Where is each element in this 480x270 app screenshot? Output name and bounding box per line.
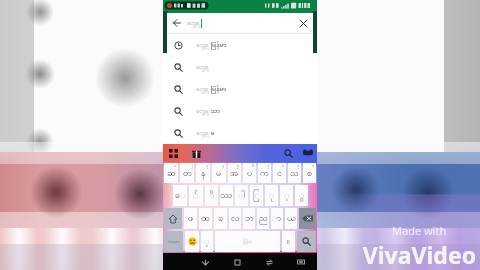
staticText: င [277, 167, 282, 180]
button[interactable]: Recents [262, 255, 276, 269]
staticText: ့ [284, 189, 290, 202]
staticText: မြန်မာ [209, 83, 227, 96]
button[interactable]: ြ [250, 185, 263, 206]
staticText: ဿ [220, 189, 233, 202]
staticText: ၉ [297, 163, 300, 169]
staticText: ယ [287, 212, 296, 225]
button[interactable]: ထ [199, 208, 212, 229]
button[interactable]: Switch keyboard [294, 255, 308, 269]
staticText: မြန်မာ [243, 239, 252, 245]
staticText: ၆ [252, 163, 255, 169]
button[interactable]: ပ [243, 163, 256, 183]
button[interactable]: ါ [235, 185, 248, 206]
button[interactable]: ွ [295, 185, 308, 206]
button[interactable]: တွေ့ရ [167, 100, 313, 122]
staticText: က [260, 167, 269, 180]
button[interactable]: ယ [285, 208, 297, 229]
button[interactable]: ေ [173, 185, 187, 206]
staticText: သာ [209, 105, 220, 118]
staticText: အ [230, 167, 239, 180]
button[interactable]: ။ [282, 231, 295, 252]
staticText: လ [231, 212, 240, 225]
staticText: ကခဂ [168, 238, 179, 245]
staticText: ြ [253, 189, 261, 202]
button[interactable]: လ [229, 208, 241, 229]
staticText: တွေ့ရ [196, 107, 209, 116]
button[interactable]: Search [282, 147, 294, 159]
staticText: ခ [218, 212, 224, 225]
button[interactable]: Search [297, 231, 316, 252]
button[interactable]: တ [180, 163, 194, 183]
button[interactable]: ့ [280, 185, 293, 206]
staticText: ထ [201, 212, 210, 225]
button[interactable]: မ [212, 163, 226, 183]
button[interactable]: ဆ [164, 163, 178, 183]
button[interactable]: တွေ့ရ [167, 34, 313, 56]
staticText: ၈ [282, 163, 285, 169]
staticText: ါ [238, 189, 246, 202]
staticText: ဆ [167, 167, 176, 180]
staticText: တွေ့ရ [196, 85, 209, 94]
staticText: ၃ [206, 163, 209, 169]
button[interactable]: တွေ့ရ [167, 56, 313, 78]
staticText: ု [269, 189, 275, 202]
staticText: ၇ [267, 163, 270, 169]
button[interactable]: ဿ [220, 185, 233, 206]
staticText: တွေ့ရ [187, 19, 200, 28]
staticText: တွေ့ရ [196, 63, 209, 72]
button[interactable]: Hide keyboard [198, 255, 212, 269]
button[interactable]: အ [228, 163, 241, 183]
staticText: တွေ့ရ [196, 41, 209, 50]
button[interactable]: Emoji [185, 231, 199, 252]
staticText: ၀ [312, 163, 315, 169]
staticText: သ [290, 167, 299, 180]
staticText: ာ [272, 212, 282, 225]
button[interactable]: စ [303, 163, 316, 183]
button[interactable]: ဖ [184, 208, 197, 229]
button[interactable]: သ [288, 163, 301, 183]
staticText: ၅ [237, 163, 240, 169]
button[interactable]: ဘ [243, 208, 255, 229]
button[interactable]: Symbols [164, 231, 183, 252]
button[interactable]: Keyboard apps [167, 147, 179, 159]
staticText: ဖ [188, 212, 194, 225]
staticText: ။ [287, 235, 290, 248]
button[interactable]: Home [230, 255, 244, 269]
staticText: ည [259, 212, 268, 225]
button[interactable]: ် [189, 185, 203, 206]
button[interactable]: ိ [205, 185, 218, 206]
staticText: ဘ [245, 212, 254, 225]
staticText: ိ [209, 189, 215, 202]
staticText: ့ [204, 235, 210, 248]
button[interactable]: Stickers [190, 147, 202, 159]
button[interactable]: Backspace [299, 208, 316, 229]
button[interactable]: န [196, 163, 210, 183]
staticText: န [201, 167, 206, 180]
staticText: ၄ [222, 163, 225, 169]
button[interactable]: ည [257, 208, 269, 229]
button[interactable]: Clear search [293, 13, 313, 33]
staticText: Made with [392, 223, 447, 238]
button[interactable]: ာ [271, 208, 283, 229]
button[interactable]: Back [167, 13, 187, 33]
staticText: ၊ [293, 231, 294, 237]
button[interactable]: ခ [214, 208, 227, 229]
staticText: ေ [175, 189, 186, 202]
button[interactable]: တွေ့ရ [167, 78, 313, 100]
button[interactable]: ့ [201, 231, 213, 252]
staticText: တွေ့ရ [196, 129, 209, 138]
staticText: တ [183, 167, 192, 180]
staticText: ် [193, 189, 199, 202]
staticText: မြန်မာ [209, 39, 227, 52]
button[interactable]: င [273, 163, 286, 183]
button[interactable]: Shift [164, 208, 182, 229]
staticText: ွ [299, 189, 305, 202]
button[interactable]: Space [215, 231, 280, 252]
button[interactable]: Games [302, 147, 314, 159]
button[interactable]: က [258, 163, 271, 183]
staticText: VivaVideo [362, 239, 476, 270]
button[interactable]: တွေ့ရ [167, 122, 313, 144]
button[interactable]: ု [265, 185, 278, 206]
staticText: ပ [247, 167, 253, 180]
staticText: ၁ [174, 163, 177, 169]
